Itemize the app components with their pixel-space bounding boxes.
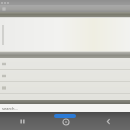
- button[interactable]: [0, 82, 130, 93]
- button[interactable]: [0, 58, 130, 69]
- button[interactable]: [0, 17, 130, 52]
- button[interactable]: Recents: [0, 112, 44, 130]
- button[interactable]: Home: [44, 112, 87, 130]
- button[interactable]: search…: [0, 104, 130, 112]
- button[interactable]: Back: [87, 112, 130, 130]
- button[interactable]: Menu: [0, 5, 130, 12]
- staticText: search…: [2, 106, 18, 111]
- button[interactable]: [0, 70, 130, 81]
- button[interactable]: Menu: [2, 7, 6, 11]
